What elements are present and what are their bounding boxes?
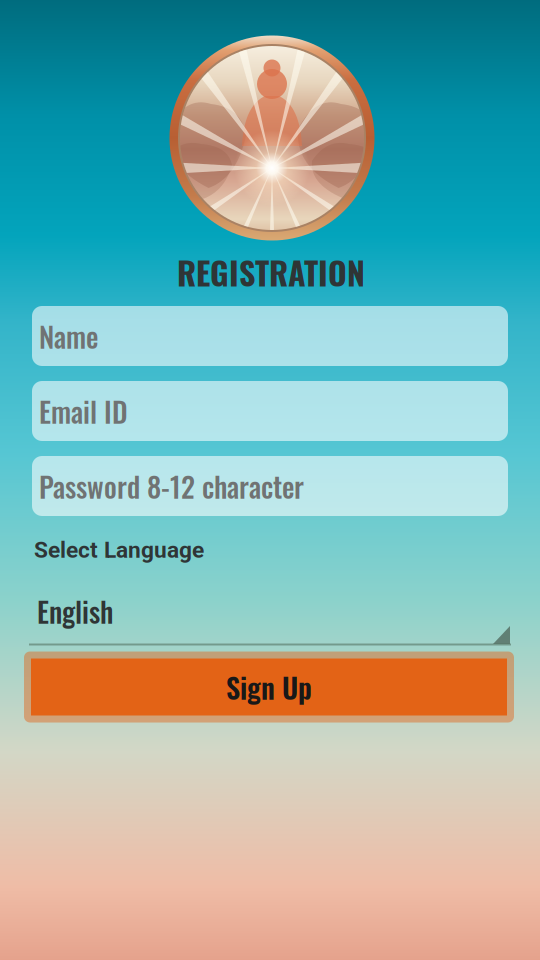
staticText: Select Language <box>34 537 204 563</box>
staticText: REGISTRATION <box>177 248 365 296</box>
staticText: Sign Up <box>226 666 312 708</box>
button[interactable]: Email ID <box>32 381 508 441</box>
button[interactable]: Name <box>32 306 508 366</box>
staticText: Password 8-12 character <box>39 465 304 507</box>
button[interactable]: English <box>29 594 511 650</box>
button[interactable]: Password 8-12 character <box>32 456 508 516</box>
staticText: Name <box>39 315 98 357</box>
button[interactable]: Sign Up <box>24 651 514 722</box>
staticText: Email ID <box>39 390 128 432</box>
staticText: English <box>37 590 113 632</box>
